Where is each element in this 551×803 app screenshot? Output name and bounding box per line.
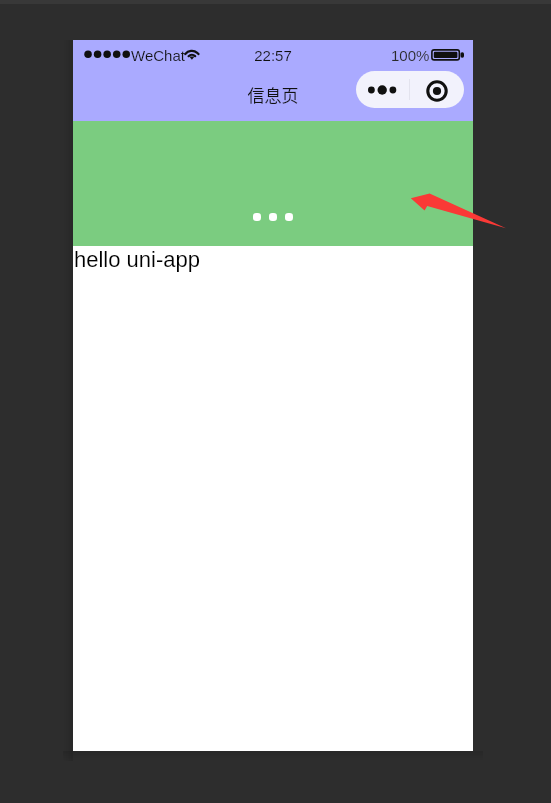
staticText: WeChat — [131, 47, 185, 64]
button[interactable]: Banner carousel — [73, 121, 473, 246]
button[interactable]: Close — [410, 72, 464, 108]
button[interactable]: Slide 1 — [253, 213, 261, 221]
button[interactable]: More — [356, 71, 409, 108]
staticText: 100% — [391, 47, 430, 64]
button[interactable]: Slide 3 — [285, 213, 293, 221]
button[interactable]: Slide 2 — [269, 213, 277, 221]
staticText: 信息页 — [73, 82, 473, 107]
staticText: hello uni-app — [74, 247, 200, 272]
staticText: 22:57 — [73, 47, 473, 64]
button[interactable]: hello uni-app — [73, 246, 473, 276]
